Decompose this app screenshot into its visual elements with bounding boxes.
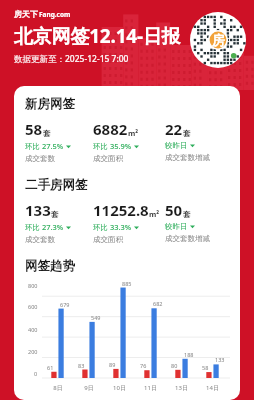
staticText: 环比 27.5%	[25, 141, 64, 151]
button[interactable]: 11252.8	[93, 200, 165, 244]
staticText: 800	[28, 282, 38, 289]
staticText: 成交套数增减	[165, 234, 210, 243]
staticText: 环比 27.3%	[25, 222, 64, 232]
button[interactable]: 133	[25, 200, 93, 244]
staticText: 6882	[93, 119, 128, 139]
staticText: 58	[202, 364, 209, 371]
staticText: 房	[212, 32, 225, 48]
staticText: 11日	[144, 384, 157, 392]
staticText: m²	[128, 128, 139, 138]
staticText: 885	[122, 280, 132, 287]
button[interactable]: 22	[165, 119, 234, 162]
staticText: 80	[171, 362, 178, 369]
button[interactable]: 58	[25, 119, 93, 163]
staticText: 61	[47, 364, 54, 371]
staticText: 套	[183, 210, 191, 219]
button[interactable]: 扫码二维码	[190, 12, 246, 68]
staticText: 58	[25, 119, 43, 139]
staticText: 22	[165, 119, 183, 139]
staticText: 成交套数增减	[165, 153, 210, 162]
button[interactable]: 50	[165, 200, 234, 243]
staticText: 网签趋势	[25, 258, 75, 274]
staticText: 9日	[84, 384, 94, 392]
staticText: 682	[153, 300, 163, 307]
staticText: 环比 35.9%	[93, 141, 132, 151]
staticText: 成交面积	[93, 235, 123, 244]
staticText: 200	[28, 348, 38, 355]
staticText: 套	[51, 210, 59, 219]
staticText: 83	[78, 362, 85, 369]
staticText: 133	[25, 200, 51, 220]
staticText: 套	[43, 129, 51, 138]
staticText: 套	[183, 129, 191, 138]
staticText: 较昨日	[165, 141, 188, 150]
staticText: 133	[215, 356, 225, 363]
staticText: 北京网签12.14-日报	[14, 23, 181, 49]
staticText: 14日	[206, 384, 219, 392]
staticText: 新房网签	[25, 96, 75, 112]
staticText: 成交套数	[25, 235, 55, 244]
staticText: 600	[28, 303, 38, 310]
staticText: 较昨日	[165, 222, 188, 231]
staticText: 10日	[113, 384, 126, 392]
staticText: 8日	[53, 384, 63, 392]
button[interactable]: 6882	[93, 119, 165, 163]
staticText: 二手房网签	[25, 177, 88, 193]
staticText: 0	[34, 370, 38, 377]
staticText: Fang.com	[39, 10, 71, 19]
staticText: m²	[149, 209, 160, 219]
staticText: 89	[109, 361, 116, 368]
staticText: 679	[60, 301, 70, 308]
staticText: 11252.8	[93, 200, 149, 220]
staticText: 环比 33.3%	[93, 222, 132, 232]
staticText: 成交套数	[25, 154, 55, 163]
staticText: 数据更新至：2025-12-15 7:00	[14, 53, 129, 65]
staticText: 400	[28, 326, 38, 333]
staticText: 50	[165, 200, 183, 220]
staticText: 房天下	[14, 9, 38, 19]
staticText: 549	[91, 314, 101, 321]
staticText: 188	[184, 351, 194, 358]
staticText: 76	[140, 362, 147, 369]
staticText: 13日	[175, 384, 188, 392]
staticText: 成交面积	[93, 154, 123, 163]
